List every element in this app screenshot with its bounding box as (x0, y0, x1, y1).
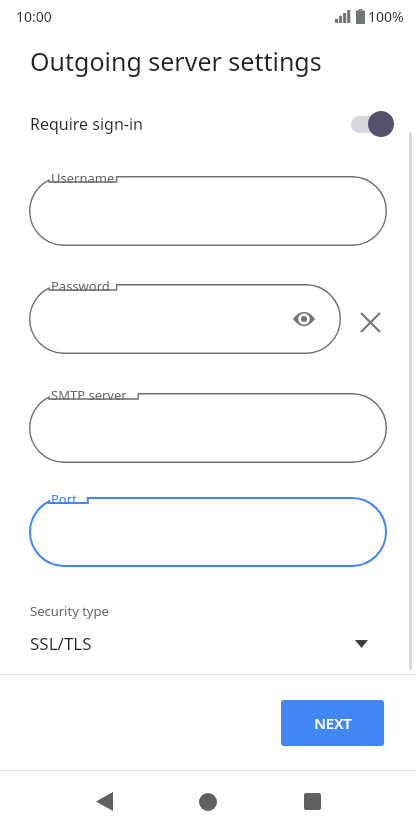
button[interactable]: Recent apps (288, 771, 336, 832)
staticText: Password (51, 277, 110, 295)
staticText: 100% (368, 7, 404, 26)
button[interactable]: Port (29, 497, 387, 567)
staticText: SMTP server (51, 386, 127, 404)
button[interactable]: NEXT (281, 700, 384, 746)
staticText: NEXT (314, 713, 352, 733)
staticText: 10:00 (16, 7, 52, 26)
staticText: Port (51, 490, 77, 508)
button[interactable]: Clear (352, 304, 388, 340)
button[interactable]: Username (29, 176, 387, 246)
staticText: Security type (30, 602, 109, 620)
button[interactable]: Require sign-in (0, 102, 416, 146)
staticText: Outgoing server settings (30, 44, 322, 78)
button[interactable]: Password (29, 284, 341, 354)
staticText: Username (51, 169, 115, 187)
button[interactable]: Security type (0, 596, 416, 668)
staticText: Require sign-in (30, 113, 143, 135)
button[interactable]: Home (184, 771, 232, 832)
staticText: SSL/TLS (30, 632, 92, 655)
button[interactable]: Back (80, 771, 128, 832)
button[interactable]: SMTP server (29, 393, 387, 463)
button[interactable]: Show password (287, 302, 321, 336)
